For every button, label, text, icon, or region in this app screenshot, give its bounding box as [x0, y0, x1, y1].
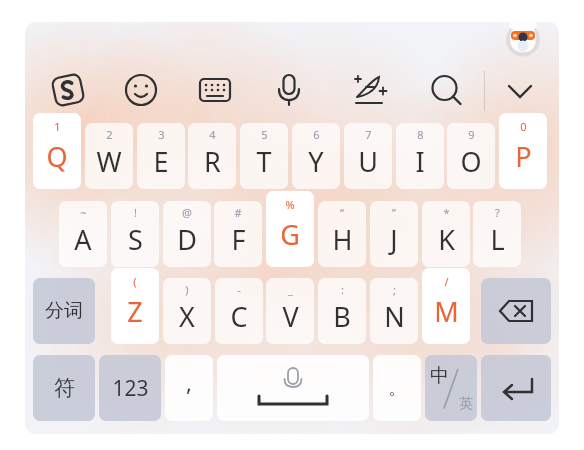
staticText: ” [392, 205, 396, 220]
button[interactable]: Keyboard layout [193, 68, 237, 112]
button[interactable]: 8 [396, 123, 444, 189]
staticText: 。 [388, 377, 406, 400]
staticText: 5 [261, 127, 268, 142]
button[interactable]: 4 [188, 123, 236, 189]
button[interactable]: / [422, 268, 470, 344]
staticText: ; [393, 282, 396, 297]
button[interactable]: 9 [447, 123, 495, 189]
staticText: A [74, 221, 92, 258]
staticText: W [96, 143, 122, 180]
button[interactable]: Emoji [119, 68, 163, 112]
button[interactable]: 7 [344, 123, 392, 189]
button[interactable]: 6 [292, 123, 340, 189]
staticText: S [128, 221, 143, 258]
staticText: ~ [80, 205, 87, 220]
staticText: # [234, 205, 242, 220]
staticText: ? [495, 205, 500, 220]
staticText: / [444, 274, 449, 289]
button[interactable]: * [422, 201, 470, 267]
staticText: R [204, 143, 221, 180]
button[interactable]: ~ [59, 201, 107, 267]
button[interactable]: ? [473, 201, 521, 267]
button[interactable]: Assistant [503, 18, 543, 58]
button[interactable]: 2 [85, 123, 133, 189]
staticText: K [438, 221, 455, 258]
button[interactable]: ( [111, 268, 159, 344]
button[interactable]: 符 [33, 355, 95, 421]
staticText: ! [134, 205, 137, 220]
staticText: 9 [468, 127, 475, 142]
staticText: Z [127, 293, 143, 330]
staticText: L [490, 221, 505, 258]
staticText: 中 [430, 364, 449, 388]
button[interactable]: 123 [99, 355, 161, 421]
button[interactable]: 0 [499, 113, 547, 189]
button[interactable]: Delete [481, 278, 551, 344]
button[interactable]: “ [318, 201, 366, 267]
staticText: - [237, 282, 241, 297]
button[interactable]: Enter [481, 355, 551, 421]
staticText: J [390, 221, 398, 258]
staticText: I [415, 143, 425, 180]
button[interactable]: # [214, 201, 262, 267]
staticText: 英 [459, 395, 473, 413]
button[interactable]: Chinese English toggle [425, 355, 477, 421]
staticText: : [341, 282, 344, 297]
staticText: Y [308, 143, 324, 180]
button[interactable]: Collapse keyboard [497, 68, 543, 112]
button[interactable]: @ [163, 201, 211, 267]
staticText: , [186, 367, 192, 397]
button[interactable]: _ [266, 278, 314, 344]
staticText: P [515, 138, 532, 175]
button[interactable]: Voice input [267, 68, 311, 112]
staticText: 6 [313, 127, 320, 142]
button[interactable]: ” [370, 201, 418, 267]
staticText: 0 [520, 119, 527, 134]
staticText: Q [46, 138, 68, 175]
staticText: 符 [54, 375, 75, 401]
staticText: 4 [209, 127, 216, 142]
button[interactable]: , [165, 355, 213, 421]
button[interactable]: 。 [373, 355, 421, 421]
button[interactable]: ) [163, 278, 211, 344]
staticText: X [179, 298, 195, 335]
staticText: E [153, 143, 169, 180]
staticText: % [285, 197, 295, 212]
button[interactable]: ; [370, 278, 418, 344]
button[interactable]: % [266, 191, 314, 267]
button[interactable]: Space [217, 355, 369, 421]
staticText: ) [185, 282, 189, 297]
staticText: 2 [106, 127, 113, 142]
staticText: * [443, 205, 450, 220]
staticText: G [280, 216, 300, 253]
staticText: C [230, 298, 248, 335]
button[interactable]: 分词 [33, 278, 95, 344]
staticText: N [384, 298, 405, 335]
staticText: M [434, 293, 459, 330]
button[interactable]: 5 [240, 123, 288, 189]
staticText: F [231, 221, 246, 258]
staticText: H [332, 221, 353, 258]
button[interactable]: 1 [33, 113, 81, 189]
staticText: @ [182, 205, 192, 220]
staticText: B [333, 298, 351, 335]
staticText: 7 [365, 127, 372, 142]
button[interactable]: : [318, 278, 366, 344]
staticText: V [282, 298, 299, 335]
button[interactable]: 3 [137, 123, 185, 189]
staticText: 123 [112, 374, 149, 403]
staticText: U [358, 143, 378, 180]
button[interactable]: Handwriting [348, 68, 392, 112]
staticText: 3 [158, 127, 165, 142]
staticText: O [460, 143, 482, 180]
button[interactable]: Search [424, 68, 468, 112]
staticText: _ [288, 282, 293, 297]
button[interactable]: Sogou [46, 68, 90, 112]
staticText: D [177, 221, 197, 258]
staticText: 1 [54, 119, 61, 134]
button[interactable]: ! [111, 201, 159, 267]
staticText: 8 [417, 127, 424, 142]
staticText: T [256, 143, 272, 180]
staticText: ( [133, 274, 137, 289]
button[interactable]: - [215, 278, 263, 344]
